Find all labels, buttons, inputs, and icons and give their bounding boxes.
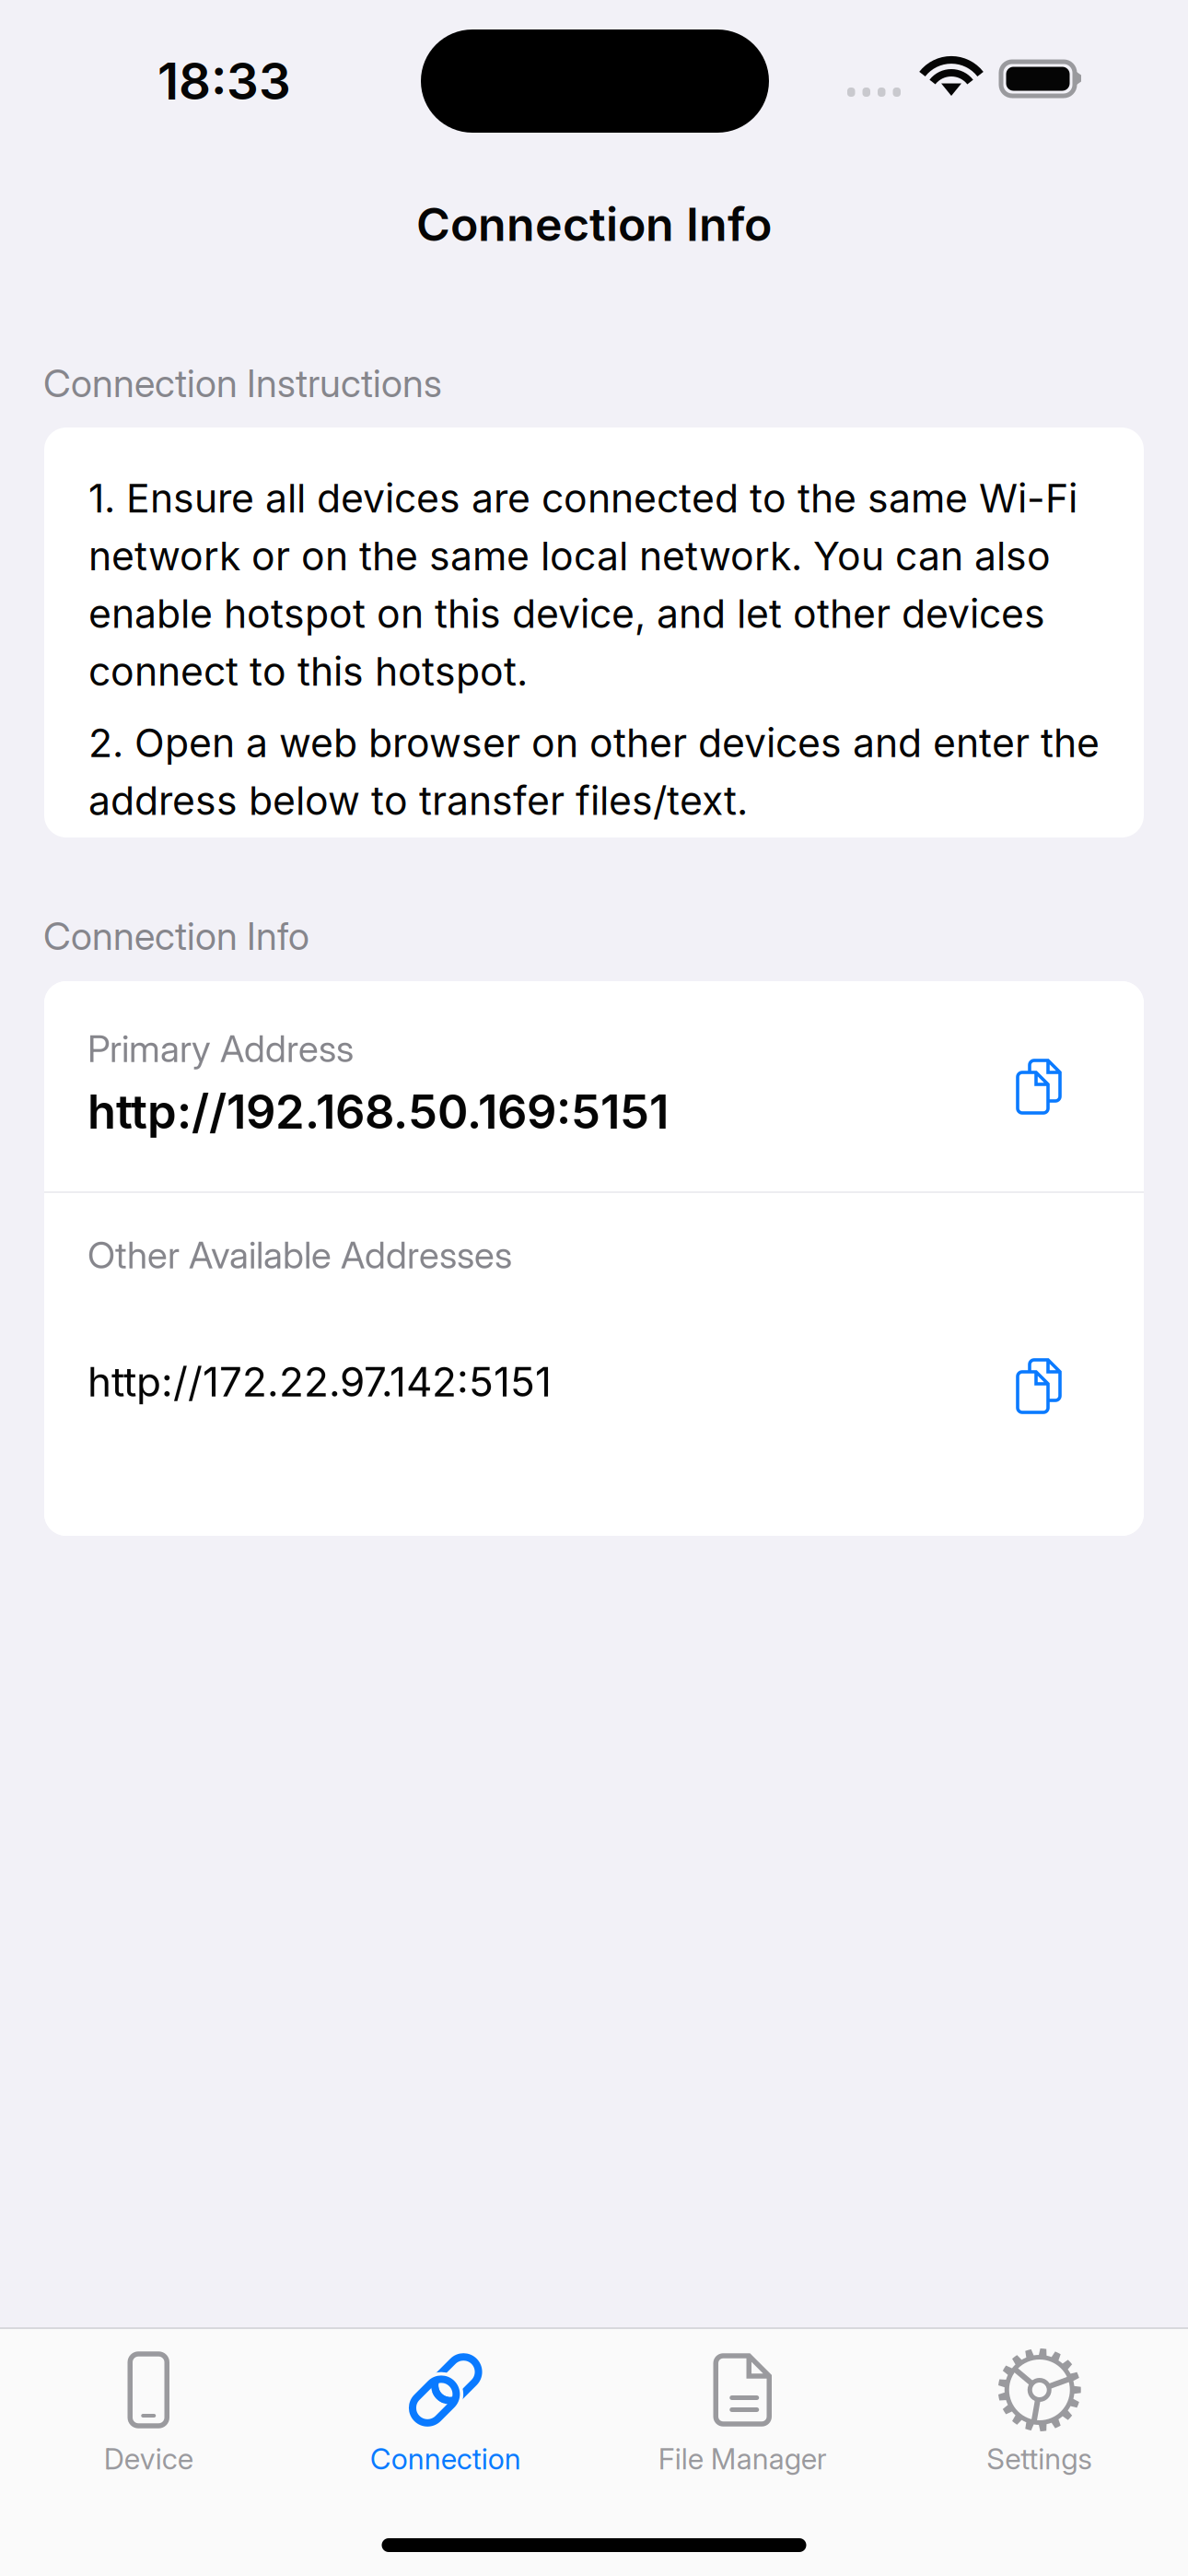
staticText: 1. Ensure all devices are connected to t… — [88, 474, 1077, 695]
staticText: http://172.22.97.142:5151 — [87, 1357, 552, 1406]
button[interactable]: Connection — [297, 2329, 594, 2493]
staticText: Connection Info — [43, 913, 309, 959]
button[interactable]: File Manager — [594, 2329, 891, 2493]
staticText: 2. Open a web browser on other devices a… — [88, 719, 1100, 824]
staticText: 18:33 — [157, 51, 291, 112]
staticText: Connection Info — [416, 196, 772, 252]
staticText: Primary Address — [87, 1026, 354, 1071]
staticText: File Manager — [658, 2441, 827, 2476]
button[interactable]: Device — [0, 2329, 297, 2493]
button[interactable]: Primary Address — [44, 981, 1144, 1191]
button[interactable]: Other Available Addresses — [44, 1193, 1144, 1536]
staticText: Connection Instructions — [43, 360, 442, 406]
staticText: http://192.168.50.169:5151 — [87, 1083, 669, 1140]
staticText: Device — [104, 2441, 193, 2476]
staticText: Connection — [370, 2441, 521, 2476]
staticText: Settings — [987, 2441, 1092, 2476]
button[interactable]: Settings — [891, 2329, 1188, 2493]
staticText: Other Available Addresses — [87, 1233, 512, 1277]
